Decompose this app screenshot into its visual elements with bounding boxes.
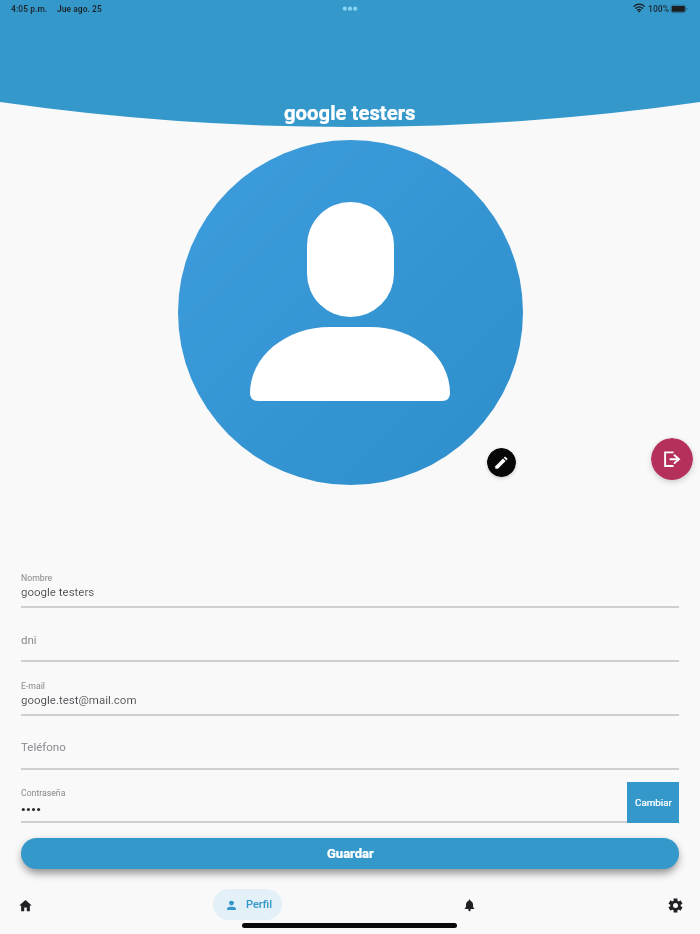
button[interactable]: Contraseña	[21, 782, 627, 824]
button[interactable]: Notifications	[449, 885, 489, 925]
button[interactable]: Edit photo	[487, 448, 516, 477]
staticText: Cambiar	[635, 797, 672, 808]
staticText: 4:05 p.m.	[11, 4, 48, 14]
staticText: google testers	[21, 585, 95, 598]
staticText: Teléfono	[21, 740, 66, 753]
button[interactable]: Nombre	[21, 567, 679, 609]
staticText: Perfil	[246, 898, 272, 911]
button[interactable]: E-mail	[21, 675, 679, 717]
button[interactable]: Teléfono	[21, 728, 679, 770]
button[interactable]: dni	[21, 621, 679, 663]
staticText: Jue ago. 25	[57, 4, 102, 14]
staticText: Contraseña	[21, 788, 66, 798]
staticText: E-mail	[21, 681, 45, 691]
button[interactable]: Cambiar	[627, 782, 679, 823]
button[interactable]: Log out	[651, 438, 693, 480]
button[interactable]: Guardar	[21, 838, 679, 869]
button[interactable]: Settings	[655, 885, 695, 925]
staticText: google testers	[284, 101, 416, 125]
staticText: Nombre	[21, 573, 53, 583]
staticText: Guardar	[327, 846, 374, 861]
staticText: 100%	[648, 4, 669, 14]
button[interactable]: Perfil	[213, 889, 282, 920]
button[interactable]: Home	[5, 885, 45, 925]
staticText: dni	[21, 633, 37, 646]
staticText: google.test@mail.com	[21, 693, 137, 706]
